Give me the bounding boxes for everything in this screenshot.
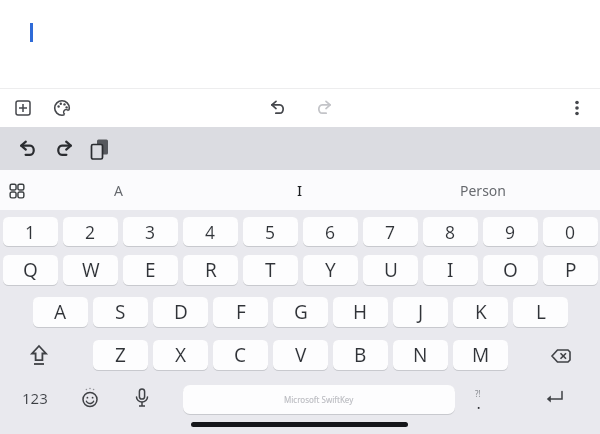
staticText: Y <box>325 257 336 283</box>
button[interactable]: Microsoft SwiftKey <box>183 385 455 414</box>
staticText: N <box>413 342 428 368</box>
button[interactable]: 4 <box>183 217 238 246</box>
button[interactable]: 3 <box>123 217 178 246</box>
button[interactable]: J <box>393 297 448 327</box>
button[interactable] <box>10 131 46 167</box>
button[interactable]: 2 <box>63 217 118 246</box>
staticText: R <box>205 257 217 283</box>
button[interactable]: U <box>363 255 418 285</box>
staticText: Q <box>23 257 38 283</box>
button[interactable]: 9 <box>483 217 538 246</box>
staticText: ?! <box>475 388 481 399</box>
button[interactable] <box>536 378 574 416</box>
staticText: F <box>236 299 246 325</box>
button[interactable]: Person <box>413 170 553 210</box>
button[interactable] <box>44 90 80 126</box>
button[interactable]: H <box>333 297 388 327</box>
button[interactable]: ?! <box>462 383 494 415</box>
staticText: 9 <box>505 220 516 244</box>
staticText: A <box>54 299 67 325</box>
button[interactable] <box>306 90 342 126</box>
staticText: M <box>472 342 490 368</box>
staticText: 1 <box>25 220 36 244</box>
button[interactable]: T <box>243 255 298 285</box>
staticText: C <box>234 342 247 368</box>
staticText: S <box>115 299 126 325</box>
button[interactable]: R <box>183 255 238 285</box>
staticText: T <box>265 257 276 283</box>
staticText: 7 <box>385 220 396 244</box>
button[interactable] <box>5 90 41 126</box>
button[interactable]: L <box>513 297 568 327</box>
button[interactable] <box>0 174 34 208</box>
button[interactable] <box>260 90 296 126</box>
button[interactable]: W <box>63 255 118 285</box>
button[interactable]: X <box>153 340 208 370</box>
button[interactable]: P <box>543 255 598 285</box>
staticText: K <box>475 299 487 325</box>
staticText: X <box>175 342 187 368</box>
staticText: Z <box>115 342 126 368</box>
button[interactable]: 6 <box>303 217 358 246</box>
staticText: 123 <box>22 388 48 408</box>
staticText: 6 <box>325 220 336 244</box>
button[interactable]: 5 <box>243 217 298 246</box>
button[interactable] <box>123 379 161 417</box>
staticText: U <box>384 257 398 283</box>
button[interactable] <box>82 131 118 167</box>
staticText: A <box>114 181 123 200</box>
button[interactable]: D <box>153 297 208 327</box>
button[interactable] <box>19 335 59 375</box>
button[interactable]: O <box>483 255 538 285</box>
button[interactable] <box>46 131 82 167</box>
staticText: 0 <box>565 220 576 244</box>
staticText: B <box>354 342 367 368</box>
button[interactable]: E <box>123 255 178 285</box>
button[interactable]: M <box>453 340 508 370</box>
staticText: P <box>565 257 577 283</box>
button[interactable]: I <box>423 255 478 285</box>
button[interactable] <box>541 336 581 376</box>
button[interactable]: 7 <box>363 217 418 246</box>
button[interactable] <box>71 379 109 417</box>
button[interactable]: Z <box>93 340 148 370</box>
staticText: 8 <box>445 220 456 244</box>
button[interactable]: 1 <box>3 217 58 246</box>
button[interactable]: A <box>48 170 188 210</box>
button[interactable]: Q <box>3 255 58 285</box>
button[interactable]: Y <box>303 255 358 285</box>
staticText: . <box>477 396 481 412</box>
staticText: J <box>418 299 424 325</box>
staticText: 2 <box>85 220 96 244</box>
button[interactable]: 123 <box>12 383 58 413</box>
staticText: I <box>297 180 303 200</box>
button[interactable]: I <box>230 170 370 210</box>
button[interactable]: G <box>273 297 328 327</box>
staticText: L <box>536 299 546 325</box>
staticText: 3 <box>145 220 156 244</box>
button[interactable]: N <box>393 340 448 370</box>
staticText: I <box>447 257 454 283</box>
staticText: G <box>294 299 308 325</box>
staticText: D <box>174 299 188 325</box>
button[interactable]: F <box>213 297 268 327</box>
button[interactable]: 8 <box>423 217 478 246</box>
staticText: 4 <box>205 220 216 244</box>
button[interactable]: 0 <box>543 217 598 246</box>
staticText: H <box>353 299 368 325</box>
staticText: V <box>295 342 307 368</box>
staticText: W <box>82 257 100 283</box>
button[interactable]: C <box>213 340 268 370</box>
button[interactable]: K <box>453 297 508 327</box>
staticText: O <box>503 257 518 283</box>
staticText: Person <box>460 181 506 200</box>
button[interactable]: B <box>333 340 388 370</box>
button[interactable]: S <box>93 297 148 327</box>
button[interactable] <box>559 90 595 126</box>
staticText: Microsoft SwiftKey <box>284 394 354 405</box>
button[interactable]: V <box>273 340 328 370</box>
button[interactable]: A <box>33 297 88 327</box>
staticText: E <box>145 257 156 283</box>
staticText: 5 <box>265 220 276 244</box>
